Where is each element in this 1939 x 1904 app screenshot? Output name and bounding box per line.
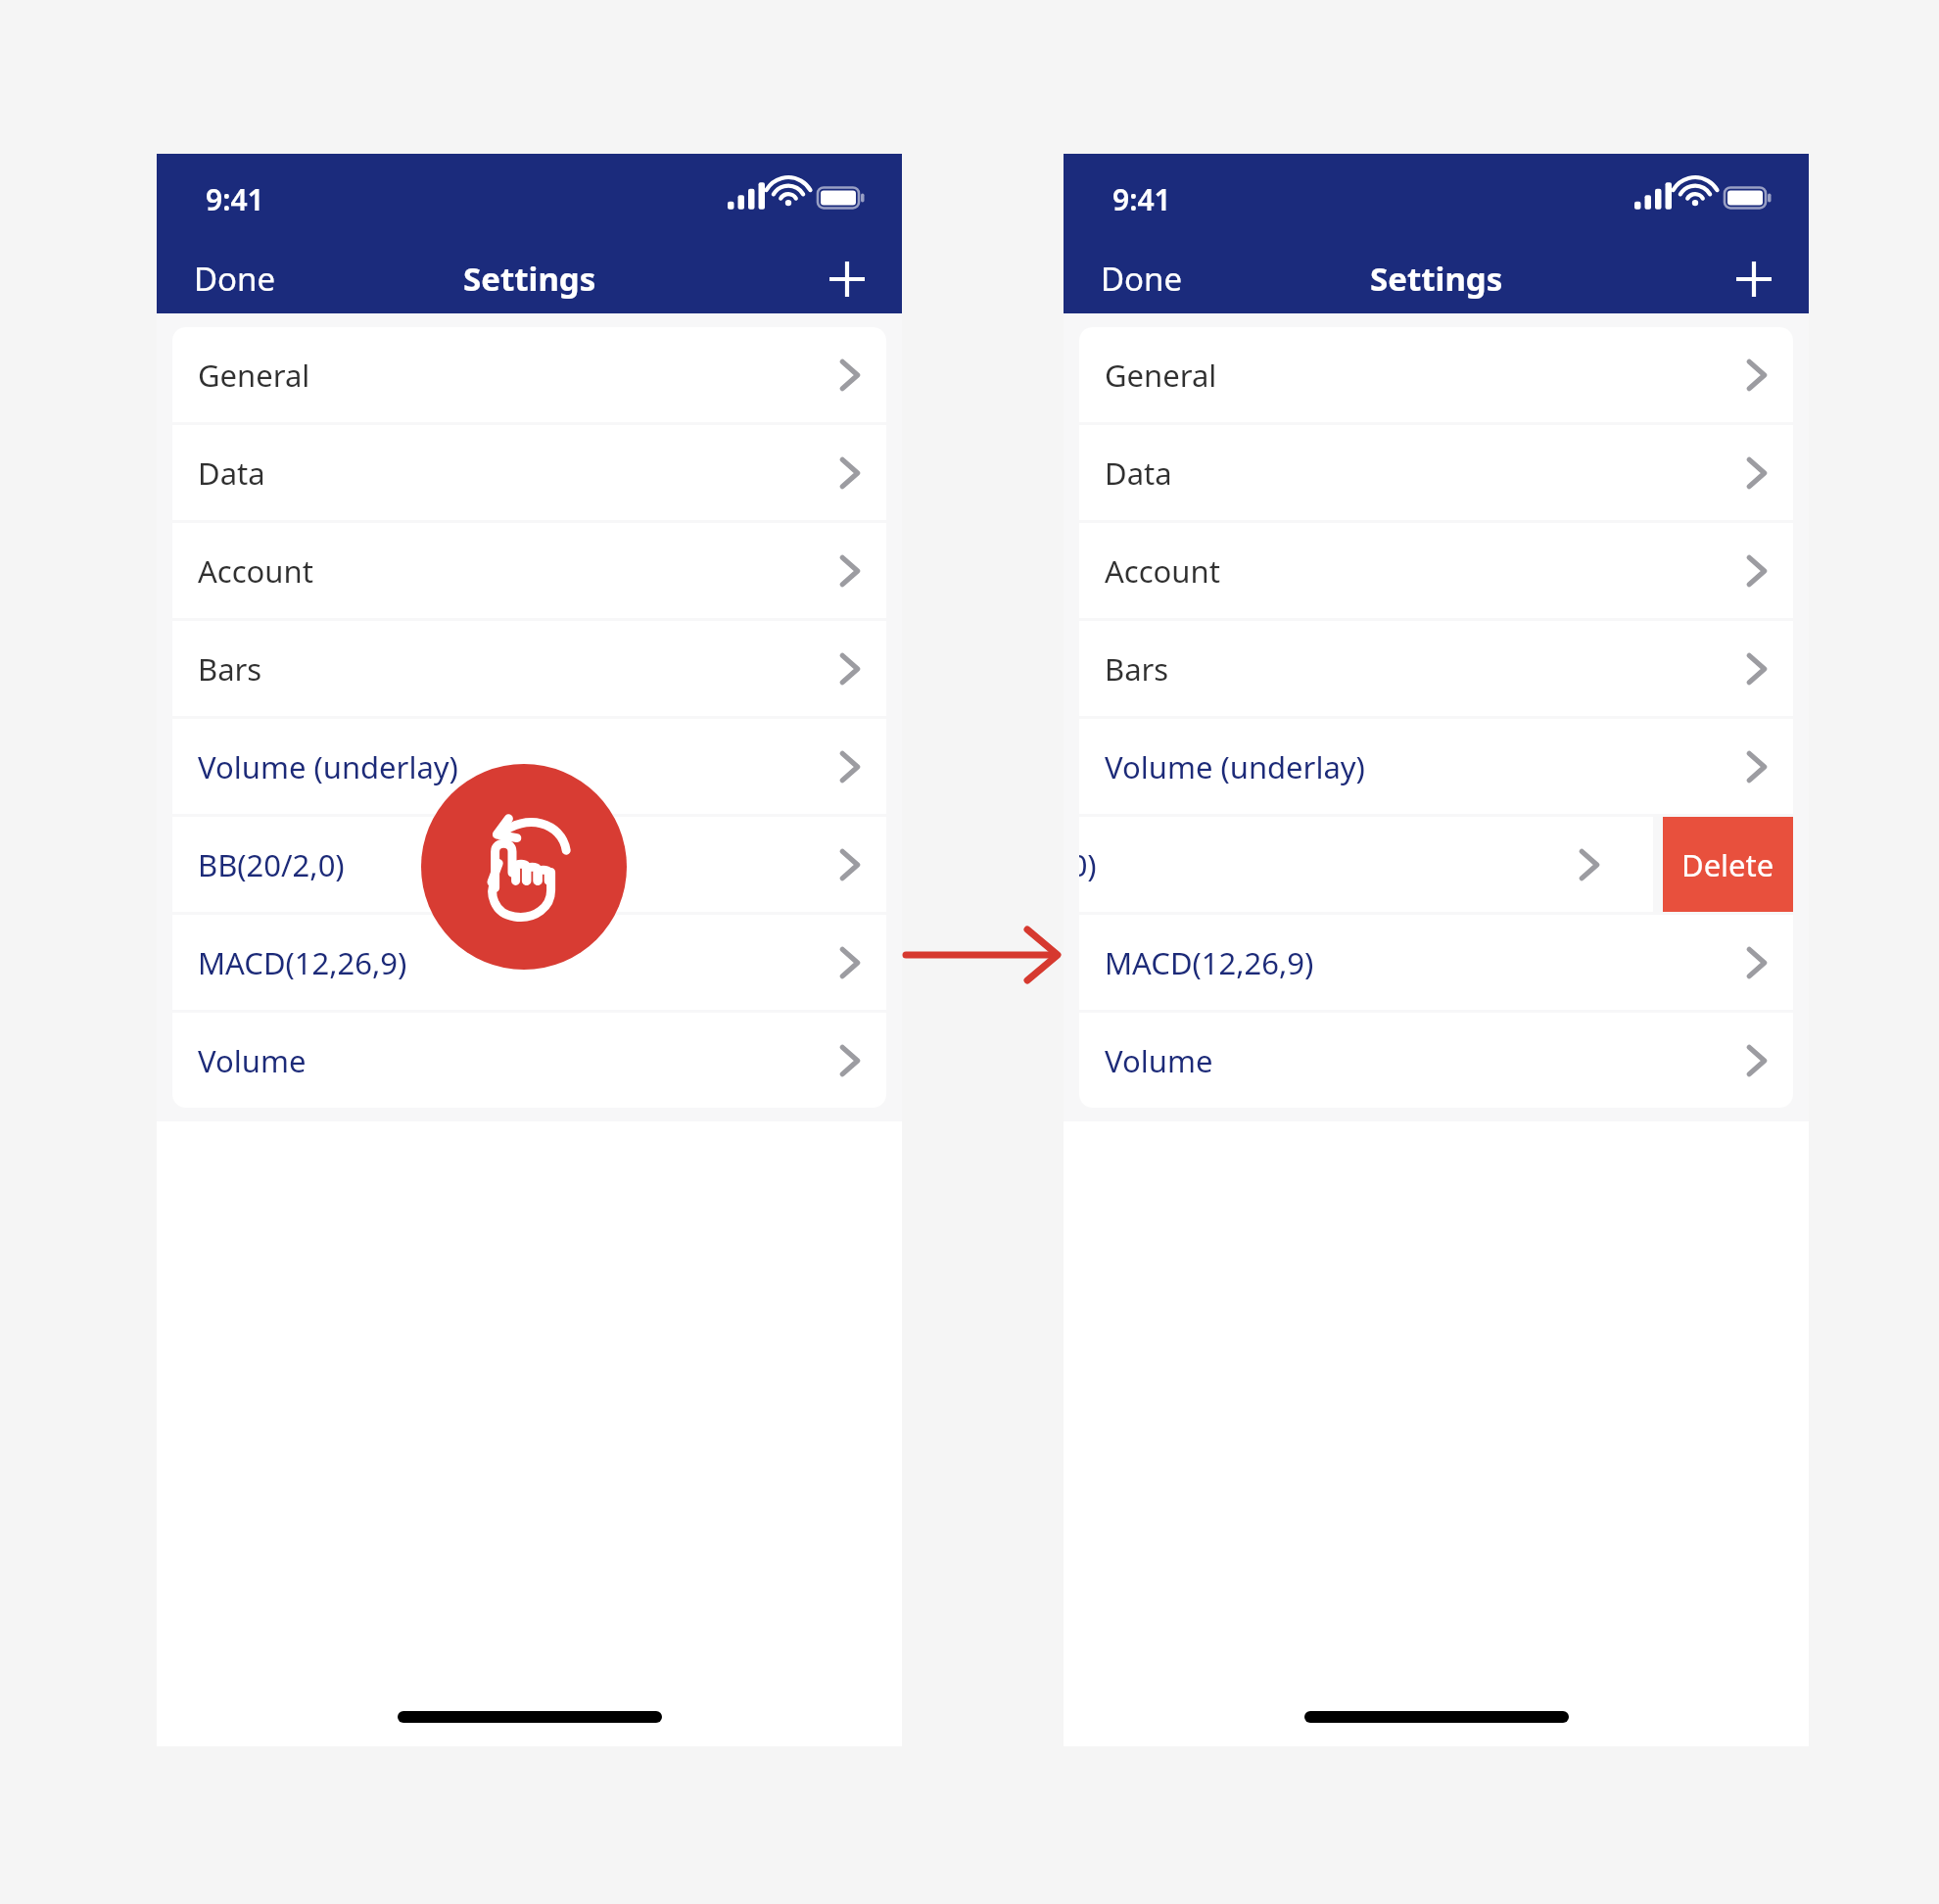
button[interactable]: Account <box>1079 523 1793 618</box>
button[interactable]: Bars <box>172 621 886 716</box>
staticText: Bars <box>1105 648 1169 690</box>
button[interactable]: Volume <box>172 1013 886 1108</box>
button[interactable]: Done <box>176 247 294 310</box>
button[interactable]: Add <box>1723 248 1785 310</box>
button[interactable]: Done <box>1083 247 1201 310</box>
button[interactable]: General <box>1079 327 1793 422</box>
button[interactable]: Volume <box>1079 1013 1793 1108</box>
staticText: Done <box>194 257 276 301</box>
staticText: MACD(12,26,9) <box>1105 942 1314 983</box>
button[interactable]: Data <box>172 425 886 520</box>
staticText: Delete <box>1681 844 1774 885</box>
button[interactable]: Account <box>172 523 886 618</box>
staticText: Account <box>1105 550 1220 592</box>
staticText: Settings <box>463 257 596 301</box>
staticText: MACD(12,26,9) <box>198 942 407 983</box>
button[interactable]: Bars <box>1079 621 1793 716</box>
staticText: Done <box>1101 257 1183 301</box>
button[interactable]: General <box>172 327 886 422</box>
staticText: General <box>1105 355 1217 396</box>
staticText: BB(20/2,0) <box>198 844 345 885</box>
staticText: 9:41 <box>206 179 264 219</box>
staticText: 9:41 <box>1112 179 1171 219</box>
staticText: Volume (underlay) <box>198 746 458 787</box>
button[interactable]: MACD(12,26,9) <box>1079 915 1793 1010</box>
button[interactable]: Data <box>1079 425 1793 520</box>
staticText: General <box>198 355 310 396</box>
staticText: Settings <box>1370 257 1503 301</box>
staticText: Account <box>198 550 313 592</box>
staticText: Data <box>198 452 265 494</box>
staticText: Volume <box>198 1040 307 1081</box>
button[interactable]: Volume (underlay) <box>1079 719 1793 814</box>
button[interactable]: MACD(12,26,9) <box>172 915 886 1010</box>
button[interactable]: BB(20/2,0) <box>1079 817 1653 912</box>
staticText: Bars <box>198 648 262 690</box>
staticText: Volume <box>1105 1040 1213 1081</box>
staticText: Volume (underlay) <box>1105 746 1365 787</box>
staticText: BB(20/2,0) <box>1079 844 1097 885</box>
other: Swipe left gesture <box>421 764 627 970</box>
button[interactable]: Add <box>816 248 878 310</box>
button[interactable]: BB(20/2,0) <box>172 817 886 912</box>
button[interactable]: Delete <box>1663 817 1793 912</box>
staticText: Data <box>1105 452 1172 494</box>
button[interactable]: Volume (underlay) <box>172 719 886 814</box>
